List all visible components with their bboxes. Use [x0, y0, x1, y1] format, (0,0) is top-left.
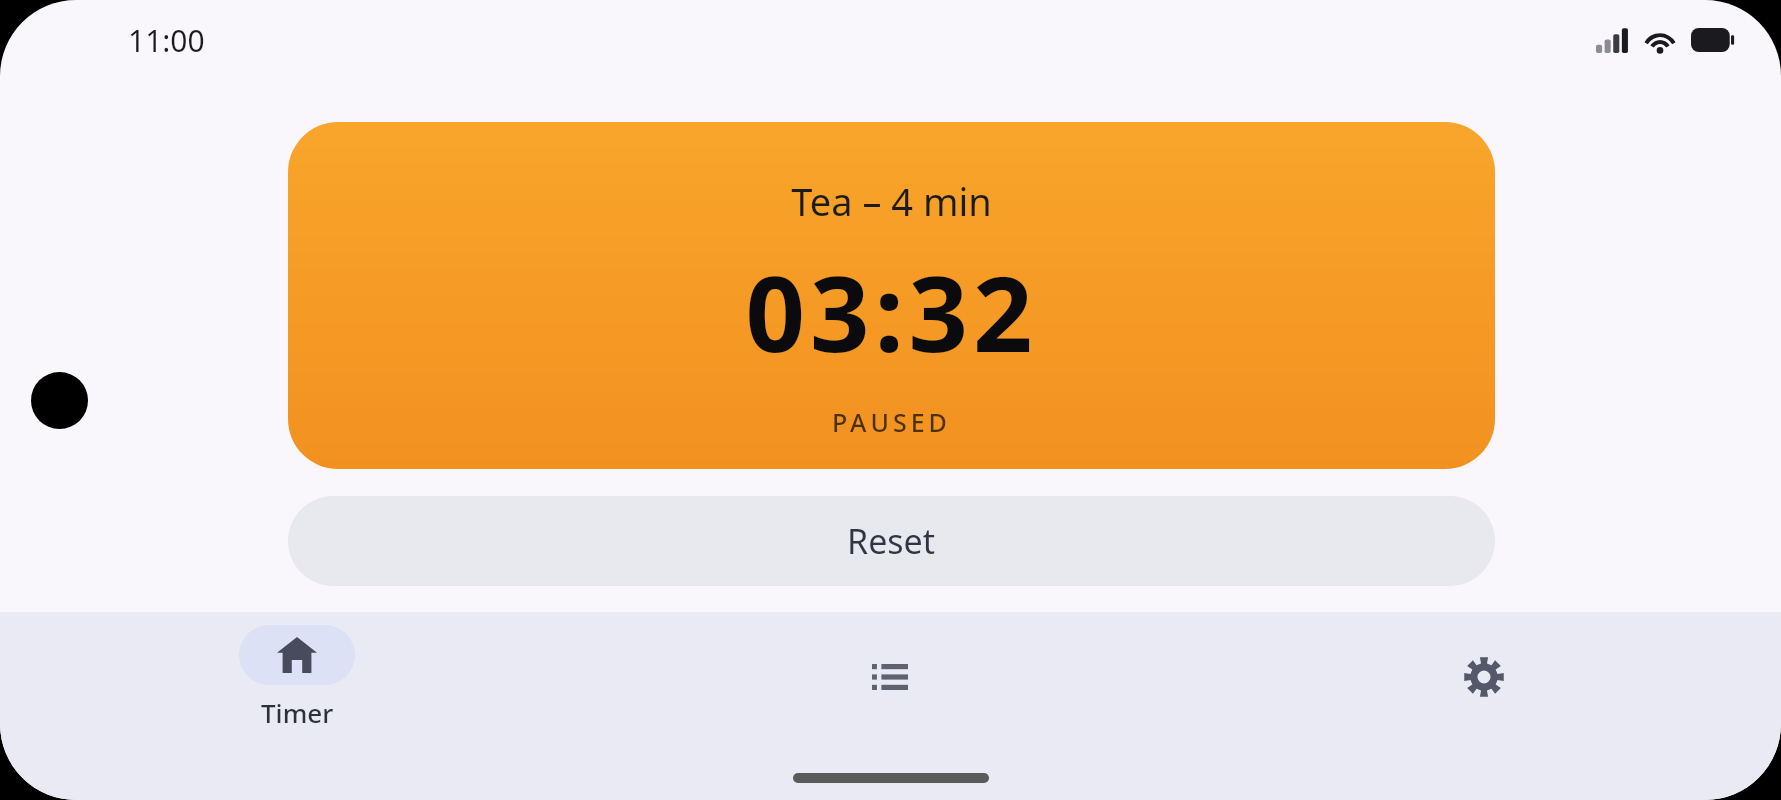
- staticText: PAUSED: [832, 405, 951, 439]
- button[interactable]: Timer: [0, 612, 593, 742]
- staticText: 03:32: [745, 241, 1038, 383]
- staticText: Timer: [261, 695, 334, 730]
- button[interactable]: Tea – 4 min: [288, 122, 1495, 469]
- staticText: Reset: [847, 518, 936, 564]
- staticText: 11:00: [128, 20, 205, 61]
- button[interactable]: Presets: [593, 612, 1187, 742]
- button[interactable]: Settings: [1187, 612, 1781, 742]
- staticText: Tea – 4 min: [791, 175, 992, 227]
- button[interactable]: Reset: [288, 496, 1495, 586]
